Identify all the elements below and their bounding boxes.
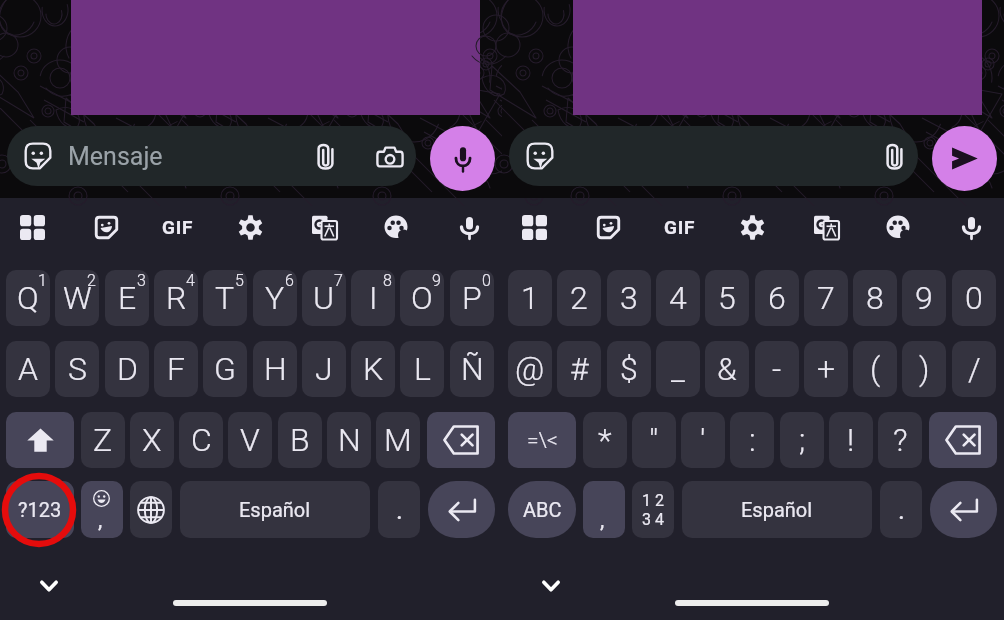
button[interactable]: @ [508,341,552,397]
button[interactable]: GIF [661,208,699,246]
button[interactable]: - [755,341,799,397]
button[interactable]: Backspace [427,412,495,468]
button[interactable]: Voice input [952,208,990,246]
button[interactable]: Hide keyboard [31,568,67,604]
button[interactable]: Number pad [632,481,674,538]
button[interactable]: H [253,341,297,397]
button[interactable]: Themes [879,208,917,246]
button[interactable]: Hide keyboard [533,568,569,604]
button[interactable]: Stickers [24,142,52,170]
button[interactable]: . [378,481,420,538]
button[interactable]: ?123 [6,481,74,538]
button[interactable]: Stickers [526,142,554,170]
button[interactable]: 0 [952,270,996,326]
button[interactable]: Ñ [450,341,494,397]
button[interactable]: C [179,412,223,468]
button[interactable]: 6 [755,270,799,326]
button[interactable]: Enter [930,481,997,538]
staticText: 1 2 [642,491,664,510]
button[interactable]: P [450,270,494,326]
button[interactable]: Stickers [589,208,627,246]
button[interactable]: 2 [557,270,601,326]
button[interactable]: N [327,412,371,468]
button[interactable]: T [203,270,247,326]
button[interactable]: Attach file [883,143,906,171]
button[interactable]: B [278,412,322,468]
button[interactable]: F [154,341,198,397]
button[interactable]: M [376,412,420,468]
button[interactable]: + [804,341,848,397]
button[interactable]: Translate [305,208,343,246]
button[interactable]: Apps [515,208,553,246]
button[interactable]: ABC [508,481,576,538]
staticText: S [68,350,87,388]
staticText: 9 [915,279,933,317]
button[interactable]: O [400,270,444,326]
button[interactable]: Q [6,270,50,326]
button[interactable]: & [705,341,749,397]
button[interactable]: Comma [583,481,625,538]
button[interactable]: 3 [607,270,651,326]
button[interactable]: S [55,341,99,397]
button[interactable]: 7 [804,270,848,326]
button[interactable]: Send [932,126,997,191]
button[interactable]: Camera [376,145,404,171]
button[interactable]: Settings [733,208,771,246]
button[interactable]: Voice input [430,126,495,191]
button[interactable]: ' [681,412,725,468]
button[interactable]: Themes [377,208,415,246]
button[interactable]: Shift [6,412,74,468]
button[interactable]: D [105,341,149,397]
button[interactable]: GIF [159,208,197,246]
button[interactable]: Enter [428,481,495,538]
button[interactable]: J [302,341,346,397]
button[interactable]: X [130,412,174,468]
button[interactable]: Change language [130,481,172,538]
button[interactable]: Stickers [509,126,918,186]
button[interactable]: 9 [902,270,946,326]
button[interactable]: 4 [656,270,700,326]
button[interactable]: V [228,412,272,468]
button[interactable]: Español [682,481,872,538]
button[interactable]: ; [780,412,824,468]
button[interactable]: Stickers [87,208,125,246]
button[interactable]: U [302,270,346,326]
button[interactable]: A [6,341,50,397]
button[interactable]: Attach file [314,143,337,171]
button[interactable]: $ [607,341,651,397]
button[interactable]: Español [180,481,370,538]
button[interactable]: " [632,412,676,468]
button[interactable]: Y [253,270,297,326]
button[interactable]: Backspace [929,412,997,468]
button[interactable]: =\< [508,412,576,468]
button[interactable]: I [351,270,395,326]
button[interactable]: * [583,412,627,468]
button[interactable]: G [203,341,247,397]
button[interactable]: R [154,270,198,326]
button[interactable]: Apps [13,208,51,246]
button[interactable]: W [55,270,99,326]
button[interactable]: # [557,341,601,397]
button[interactable]: ? [878,412,922,468]
button[interactable]: L [400,341,444,397]
button[interactable]: / [952,341,996,397]
button[interactable]: Z [81,412,125,468]
button[interactable]: Emoji [81,481,123,538]
button[interactable]: E [105,270,149,326]
button[interactable]: 1 [508,270,552,326]
button[interactable]: ) [902,341,946,397]
button[interactable]: : [730,412,774,468]
button[interactable]: 8 [853,270,897,326]
button[interactable]: 5 [705,270,749,326]
staticText: ?123 [18,498,62,521]
button[interactable]: Voice input [450,208,488,246]
button[interactable]: Stickers [7,126,416,186]
button[interactable]: K [351,341,395,397]
staticText: B [290,421,310,459]
button[interactable]: Translate [807,208,845,246]
button[interactable]: ! [829,412,873,468]
button[interactable]: Settings [231,208,269,246]
button[interactable]: ( [853,341,897,397]
button[interactable]: . [880,481,922,538]
button[interactable]: _ [656,341,700,397]
